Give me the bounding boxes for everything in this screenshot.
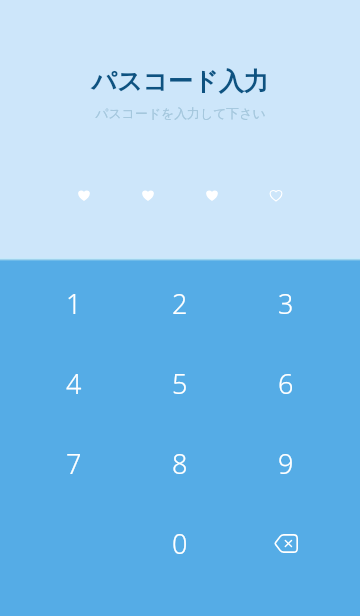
staticText: 4 — [66, 365, 82, 402]
button[interactable]: Delete — [233, 503, 339, 583]
button[interactable]: 2 — [127, 263, 233, 343]
staticText: パスコードを入力して下さい — [95, 106, 266, 122]
button[interactable]: 7 — [21, 423, 127, 503]
staticText: 2 — [172, 285, 188, 322]
button[interactable]: 8 — [127, 423, 233, 503]
staticText: 3 — [278, 285, 294, 322]
button[interactable]: 5 — [127, 343, 233, 423]
staticText: 0 — [172, 525, 188, 562]
button[interactable]: 4 — [21, 343, 127, 423]
button[interactable]: 6 — [233, 343, 339, 423]
button[interactable]: 1 — [21, 263, 127, 343]
button[interactable]: 0 — [127, 503, 233, 583]
staticText: 6 — [278, 365, 294, 402]
staticText: パスコード入力 — [91, 66, 269, 97]
staticText: 1 — [66, 285, 82, 322]
staticText: 5 — [172, 365, 188, 402]
staticText: 8 — [172, 445, 188, 482]
button[interactable]: 3 — [233, 263, 339, 343]
button[interactable]: 9 — [233, 423, 339, 503]
staticText: 7 — [66, 445, 82, 482]
other: Backspace — [274, 534, 298, 553]
staticText: 9 — [278, 445, 294, 482]
